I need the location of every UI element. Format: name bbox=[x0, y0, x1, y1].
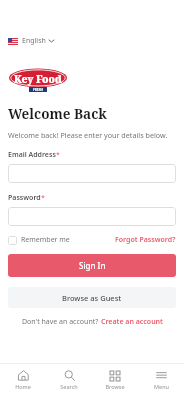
button[interactable] bbox=[8, 207, 176, 226]
button[interactable]: Browse as Guest bbox=[8, 287, 176, 308]
button[interactable]: Home bbox=[0, 370, 46, 390]
staticText: Key Food bbox=[14, 72, 62, 86]
staticText: Welcome back! Please enter your details … bbox=[8, 130, 168, 140]
button[interactable]: Remember me bbox=[8, 235, 70, 245]
staticText: Create an account bbox=[101, 317, 163, 327]
staticText: Browse as Guest bbox=[62, 293, 122, 303]
staticText: Remember me bbox=[21, 235, 70, 245]
staticText: Home bbox=[15, 383, 31, 390]
staticText: * bbox=[41, 193, 45, 203]
staticText: Search bbox=[60, 383, 78, 390]
staticText: FRESH bbox=[33, 88, 43, 92]
staticText: Don't have an account? bbox=[22, 317, 101, 327]
button[interactable]: Browse bbox=[92, 371, 138, 390]
staticText: Email Address bbox=[8, 150, 56, 160]
button[interactable]: Search bbox=[46, 370, 92, 390]
staticText: Password bbox=[8, 193, 41, 203]
other: Menu bbox=[156, 370, 167, 381]
staticText: Forgot Password? bbox=[115, 235, 176, 245]
staticText: Menu bbox=[154, 383, 169, 390]
other: Home bbox=[18, 370, 29, 381]
staticText: English bbox=[22, 36, 46, 46]
staticText: Welcome Back bbox=[8, 105, 107, 123]
staticText: Browse bbox=[105, 383, 125, 390]
staticText: Sign In bbox=[79, 260, 106, 271]
button[interactable]: Sign In bbox=[8, 254, 176, 277]
button[interactable]: Menu bbox=[138, 370, 184, 390]
button[interactable]: Forgot Password? bbox=[115, 235, 176, 245]
button[interactable] bbox=[8, 164, 176, 183]
other: Search bbox=[64, 370, 75, 381]
button[interactable]: Create an account bbox=[101, 317, 163, 327]
staticText: * bbox=[56, 150, 60, 160]
other: Browse bbox=[110, 371, 120, 381]
button[interactable]: English bbox=[7, 34, 55, 48]
